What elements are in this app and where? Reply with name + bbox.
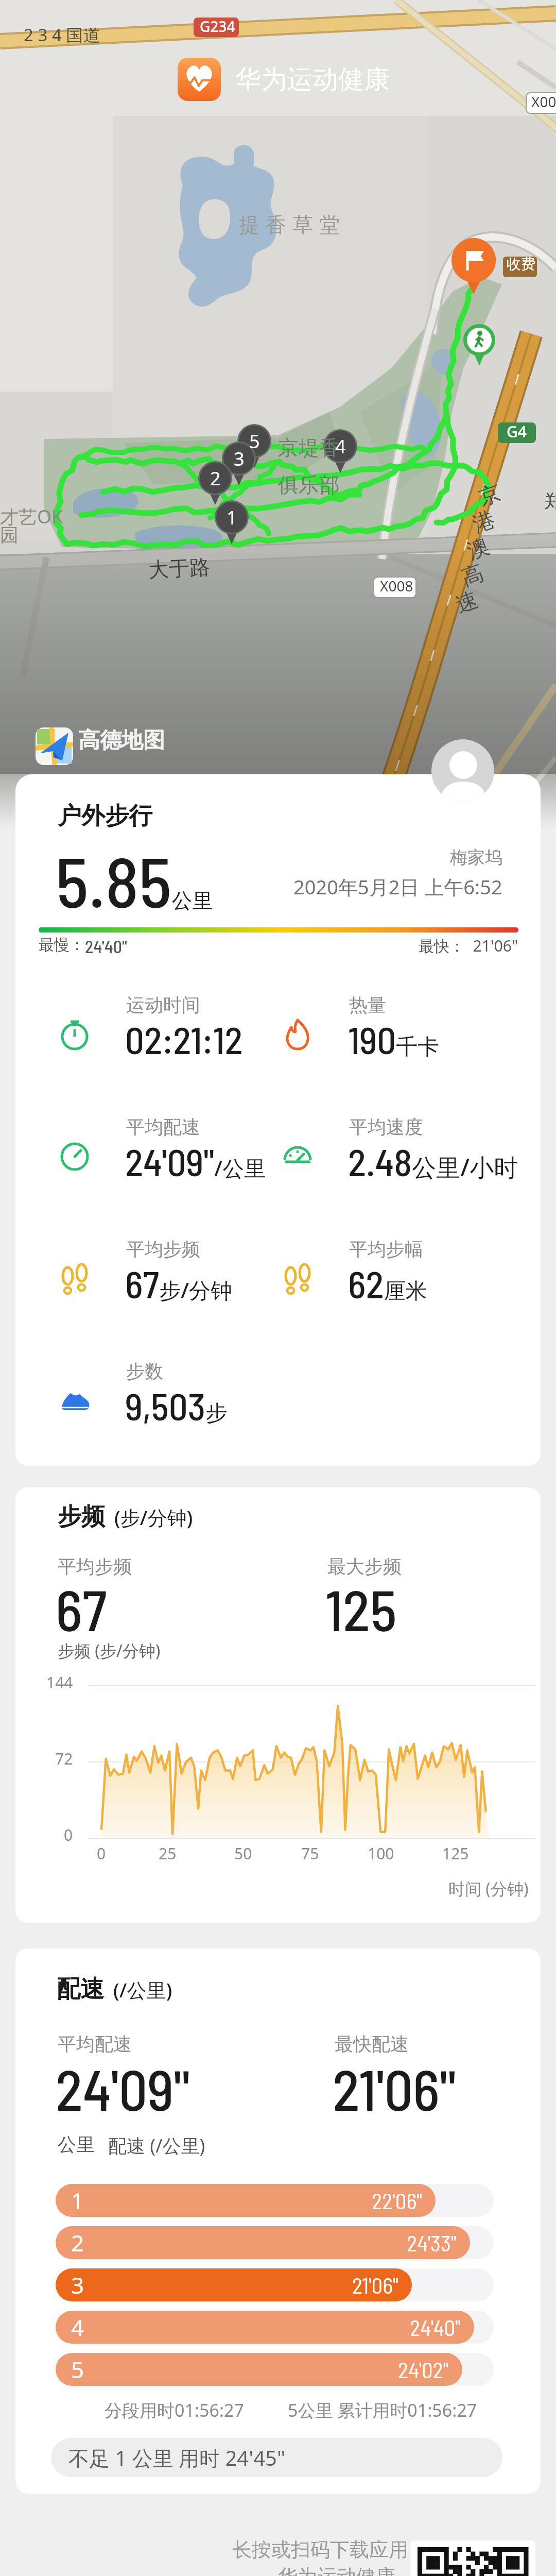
staticText: 3 [71, 2269, 84, 2300]
staticText: 速 [452, 586, 482, 619]
button[interactable]: 2 [56, 2226, 470, 2259]
staticText: 24'09"/公里 [125, 1139, 266, 1184]
staticText: 24'33" [407, 2229, 457, 2256]
staticText: 配速 (/公里) [108, 2133, 205, 2158]
staticText: 4 [335, 434, 346, 459]
staticText: 步频 (步/分钟) [58, 1639, 161, 1662]
staticText: 步频 [58, 1502, 105, 1532]
staticText: 02:21:12 [125, 1016, 243, 1062]
staticText: 平均配速 [126, 1115, 200, 1139]
staticText: 72 [55, 1748, 73, 1769]
staticText: 长按或扫码下载应用 [232, 2537, 408, 2562]
staticText: 平均步频 [58, 1555, 132, 1578]
staticText: 才艺OK [0, 504, 63, 529]
staticText: 125 [325, 1574, 397, 1642]
staticText: 配速 [57, 1974, 104, 2004]
staticText: 俱乐部 [278, 472, 340, 498]
button[interactable]: 华为运动健康 [178, 58, 390, 101]
button[interactable]: 1 [56, 2184, 436, 2217]
staticText: 平均步幅 [349, 1238, 423, 1261]
button[interactable] [410, 2540, 535, 2576]
staticText: 提香草堂 [236, 212, 343, 238]
staticText: 热量 [349, 993, 386, 1016]
button[interactable] [431, 739, 494, 802]
staticText: 2 3 4 国道 [24, 23, 100, 46]
staticText: 园 [0, 523, 19, 547]
staticText: 100 [368, 1843, 394, 1864]
staticText: 21'06" [352, 2272, 398, 2298]
staticText: 高 [458, 559, 487, 592]
staticText: 公里 [58, 2133, 95, 2156]
staticText: 收费 [507, 255, 535, 273]
staticText: 5 [249, 429, 260, 454]
staticText: 67 [56, 1574, 107, 1642]
button[interactable]: 4 [56, 2311, 474, 2344]
button[interactable]: 3 [56, 2268, 412, 2301]
staticText: 最慢： [39, 935, 85, 955]
staticText: 运动时间 [126, 993, 200, 1016]
staticText: 24'09" [56, 2054, 190, 2122]
staticText: 京堤香 [278, 435, 340, 461]
staticText: (/公里) [113, 1976, 172, 2003]
staticText: 3 [234, 446, 245, 471]
staticText: 2 [210, 466, 221, 491]
staticText: G234 [200, 16, 235, 36]
staticText: 1 [227, 505, 237, 530]
staticText: 澳 [463, 532, 493, 565]
staticText: 2 [71, 2227, 84, 2258]
staticText: 24'02" [398, 2356, 449, 2383]
staticText: 时间 (分钟) [448, 1877, 529, 1900]
staticText: 户外步行 [58, 801, 152, 831]
staticText: 华为运动健康 [278, 2564, 395, 2576]
staticText: 郑 [545, 489, 556, 513]
staticText: 0 [97, 1843, 106, 1864]
staticText: 港 [469, 506, 499, 539]
staticText: 步数 [126, 1360, 163, 1383]
staticText: 大于路 [148, 554, 211, 583]
staticText: 125 [442, 1843, 469, 1864]
staticText: X00 [531, 92, 556, 111]
staticText: 不足 1 公里 用时 24'45" [68, 2444, 286, 2472]
staticText: 平均步频 [126, 1238, 200, 1261]
staticText: 高德地图 [78, 727, 165, 754]
staticText: 75 [301, 1843, 319, 1864]
staticText: 144 [46, 1672, 73, 1693]
staticText: 24'40" [410, 2314, 461, 2341]
staticText: 京 [475, 479, 504, 512]
staticText: 25 [159, 1843, 177, 1864]
staticText: 190千卡 [348, 1016, 440, 1062]
staticText: 62厘米 [348, 1261, 427, 1306]
staticText: 最快： 21'06" [419, 935, 518, 956]
staticText: 4 [71, 2312, 84, 2343]
staticText: 50 [234, 1843, 252, 1864]
staticText: 24'40" [85, 936, 127, 957]
staticText: 2.48公里/小时 [348, 1139, 518, 1184]
staticText: 22'06" [372, 2187, 422, 2214]
staticText: 5公里 累计用时01:56:27 [288, 2398, 477, 2422]
staticText: 5.85公里 [56, 838, 213, 922]
staticText: 5 [71, 2354, 84, 2385]
staticText: 梅家坞 [450, 846, 502, 869]
staticText: X008 [380, 576, 413, 596]
staticText: 9,503步 [125, 1383, 228, 1428]
button[interactable]: 5 [56, 2353, 462, 2386]
staticText: 最快配速 [335, 2032, 409, 2056]
staticText: 平均配速 [58, 2032, 132, 2056]
staticText: (步/分钟) [114, 1504, 193, 1531]
staticText: 分段用时01:56:27 [105, 2398, 244, 2422]
staticText: 21'06" [333, 2054, 456, 2122]
staticText: 华为运动健康 [235, 63, 390, 96]
staticText: G4 [507, 421, 527, 442]
staticText: 最大步频 [327, 1555, 402, 1578]
staticText: 1 [71, 2185, 84, 2216]
staticText: 平均速度 [349, 1115, 423, 1139]
staticText: 2020年5月2日 上午6:52 [293, 873, 502, 900]
staticText: 0 [64, 1824, 73, 1845]
staticText: 67步/分钟 [125, 1261, 233, 1306]
